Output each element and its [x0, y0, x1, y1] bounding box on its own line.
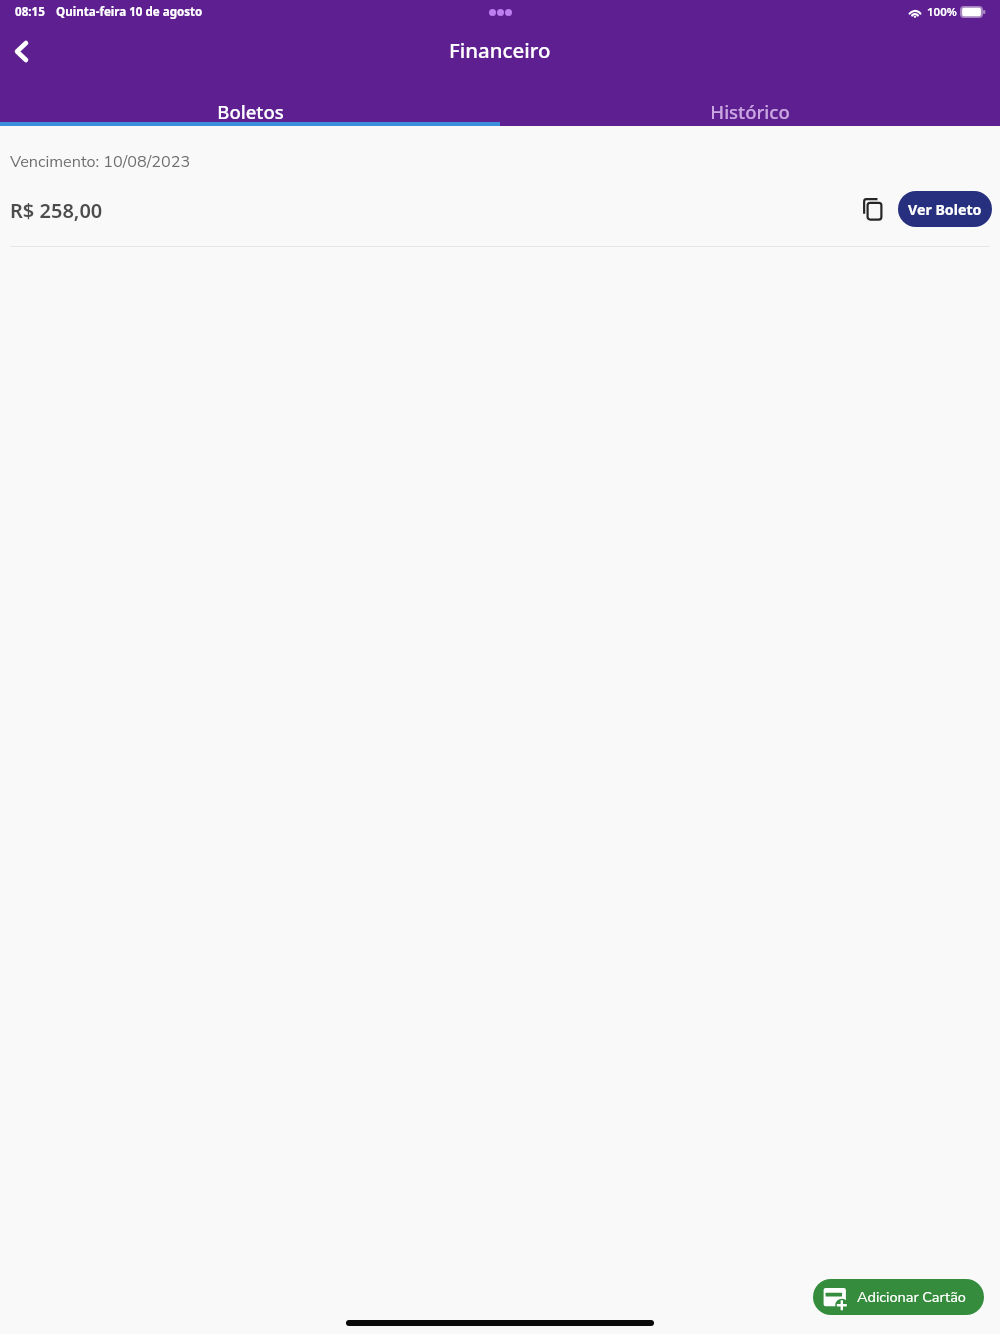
- staticText: 100%: [927, 4, 957, 20]
- button[interactable]: Ver Boleto: [898, 191, 992, 227]
- button[interactable]: Histórico: [500, 84, 1000, 126]
- staticText: Boletos: [217, 99, 284, 124]
- staticText: Ver Boleto: [908, 200, 982, 219]
- staticText: Quinta-feira 10 de agosto: [56, 4, 203, 20]
- button[interactable]: Copiar código de barras: [853, 191, 889, 227]
- staticText: 08:15: [15, 4, 45, 20]
- button[interactable]: Adicionar Cartão: [813, 1279, 984, 1315]
- button[interactable]: Voltar: [0, 29, 43, 73]
- staticText: Adicionar Cartão: [857, 1287, 966, 1307]
- staticText: Financeiro: [449, 36, 551, 64]
- button[interactable]: Boletos: [0, 84, 500, 126]
- staticText: R$ 258,00: [10, 197, 103, 224]
- staticText: Histórico: [710, 99, 790, 124]
- staticText: Vencimento: 10/08/2023: [10, 151, 191, 173]
